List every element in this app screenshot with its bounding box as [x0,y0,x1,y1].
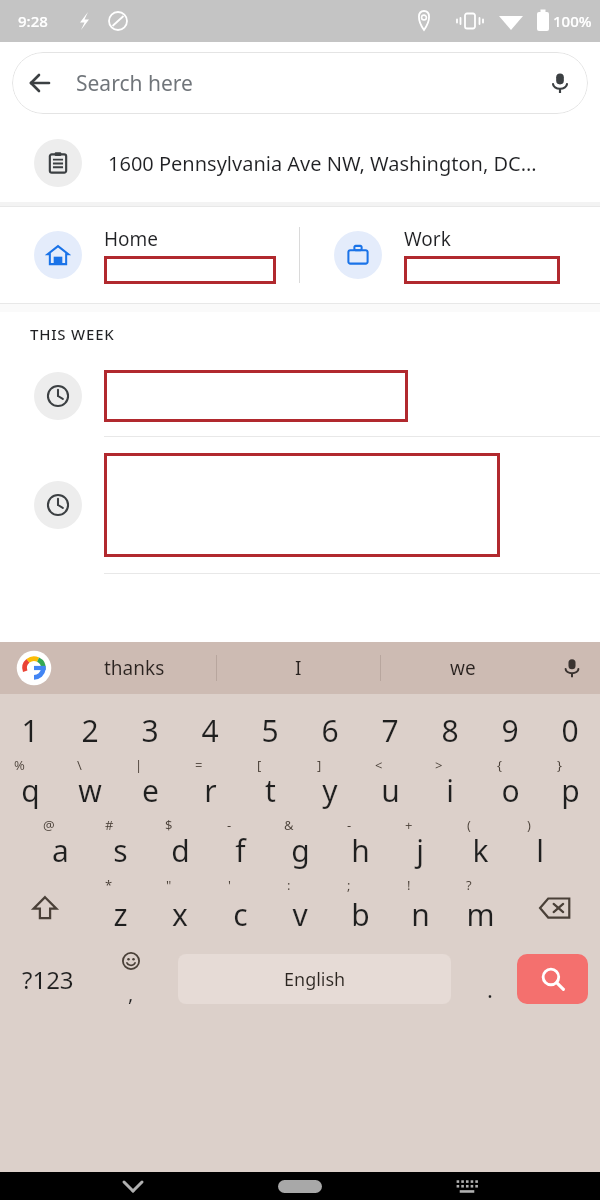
staticText: 4 [201,710,219,751]
button[interactable]: Work [300,207,600,303]
button[interactable]: 6 [300,694,360,754]
staticText: c [233,894,248,935]
button[interactable] [0,356,600,436]
button[interactable]: { [480,754,540,814]
staticText: Search here [76,69,532,98]
button[interactable]: English [178,954,451,1004]
button[interactable]: - [330,814,390,874]
button[interactable]: Switch keyboard [442,1172,492,1200]
button[interactable]: " [150,874,210,942]
button[interactable]: I [217,642,380,694]
button[interactable]: [ [240,754,300,814]
staticText: ? [466,876,472,894]
button[interactable]: ' [210,874,270,942]
button[interactable]: & [270,814,330,874]
staticText: l [536,830,544,871]
button[interactable]: 9 [480,694,540,754]
button[interactable]: ] [300,754,360,814]
staticText: thanks [104,655,165,681]
button[interactable]: Search [517,954,588,1004]
button[interactable]: ! [390,874,450,942]
button[interactable]: Voice input [544,642,600,694]
button[interactable]: } [540,754,600,814]
staticText: x [172,894,188,935]
staticText: # [105,816,114,834]
button[interactable]: # [90,814,150,874]
staticText: 9 [501,710,519,751]
staticText: r [204,770,217,811]
staticText: z [113,894,128,935]
staticText: ' [228,876,231,894]
button[interactable]: Back [12,52,588,114]
staticText: THIS WEEK [30,324,115,344]
button[interactable]: 1600 Pennsylvania Ave NW, Washington, DC… [0,124,600,202]
button[interactable]: Shift [0,874,90,942]
staticText: < [375,756,383,774]
button[interactable]: % [0,754,60,814]
button[interactable]: . [463,942,517,1016]
button[interactable]: - [210,814,270,874]
staticText: . [487,974,493,1004]
staticText: g [291,830,310,871]
button[interactable]: 1 [0,694,60,754]
staticText: n [411,894,430,935]
staticText: o [501,770,520,811]
button[interactable]: 0 [540,694,600,754]
button[interactable]: 4 [180,694,240,754]
button[interactable]: \ [60,754,120,814]
button[interactable]: 7 [360,694,420,754]
button[interactable]: Home [0,207,299,303]
staticText: ] [317,756,322,774]
staticText: 2 [81,710,99,751]
staticText: k [472,830,489,871]
button[interactable]: thanks [52,642,216,694]
staticText: w [78,770,102,811]
staticText: h [351,830,370,871]
button[interactable]: Emoji and comma [96,942,166,1016]
button[interactable]: ( [450,814,510,874]
staticText: - [227,816,232,834]
button[interactable]: + [390,814,450,874]
button[interactable]: @ [30,814,90,874]
button[interactable]: * [90,874,150,942]
button[interactable]: ; [330,874,390,942]
button[interactable]: < [360,754,420,814]
staticText: { [497,756,502,774]
button[interactable]: $ [150,814,210,874]
button[interactable]: Backspace [510,874,600,942]
button[interactable]: 2 [60,694,120,754]
button[interactable]: > [420,754,480,814]
staticText: 1 [21,710,39,751]
staticText: j [416,830,424,871]
staticText: % [14,756,25,774]
button[interactable]: = [180,754,240,814]
staticText: - [347,816,352,834]
staticText: & [284,816,294,834]
staticText: 3 [141,710,159,751]
staticText: | [135,756,143,774]
staticText: * [105,876,113,894]
staticText: > [435,756,443,774]
button[interactable]: we [381,642,544,694]
staticText: v [292,894,308,935]
button[interactable]: ) [510,814,570,874]
staticText: i [446,770,454,811]
button[interactable]: Back [12,55,68,111]
button[interactable]: Home [260,1172,340,1200]
button[interactable]: Hide keyboard [108,1172,158,1200]
staticText: b [351,894,370,935]
button[interactable]: ? [450,874,510,942]
button[interactable] [0,437,600,573]
button[interactable]: 8 [420,694,480,754]
button[interactable]: 3 [120,694,180,754]
staticText: 7 [381,710,399,751]
button[interactable]: : [270,874,330,942]
staticText: $ [165,816,173,834]
button[interactable]: 5 [240,694,300,754]
button[interactable]: Google [16,650,52,686]
button[interactable]: | [120,754,180,814]
button[interactable]: ?123 [0,942,96,1016]
button[interactable]: Voice search [532,55,588,111]
staticText: 1600 Pennsylvania Ave NW, Washington, DC… [108,150,537,177]
staticText: = [195,756,203,774]
